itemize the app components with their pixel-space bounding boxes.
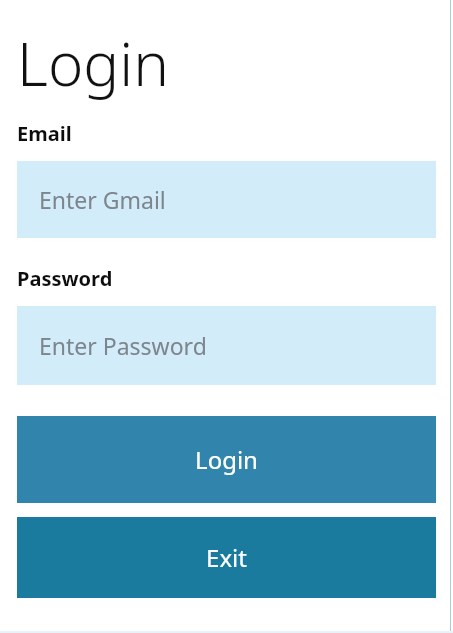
staticText: Exit <box>206 541 247 574</box>
button[interactable]: Login <box>17 416 436 503</box>
staticText: Enter Gmail <box>39 184 166 215</box>
staticText: Login <box>17 22 169 104</box>
staticText: Password <box>17 265 113 292</box>
staticText: Email <box>17 120 72 147</box>
staticText: Login <box>195 443 258 476</box>
other: Edge divider <box>450 0 451 633</box>
button[interactable]: Exit <box>17 517 436 598</box>
button[interactable]: Enter Password <box>17 306 436 385</box>
staticText: Enter Password <box>39 330 207 361</box>
button[interactable]: Enter Gmail <box>17 161 436 238</box>
